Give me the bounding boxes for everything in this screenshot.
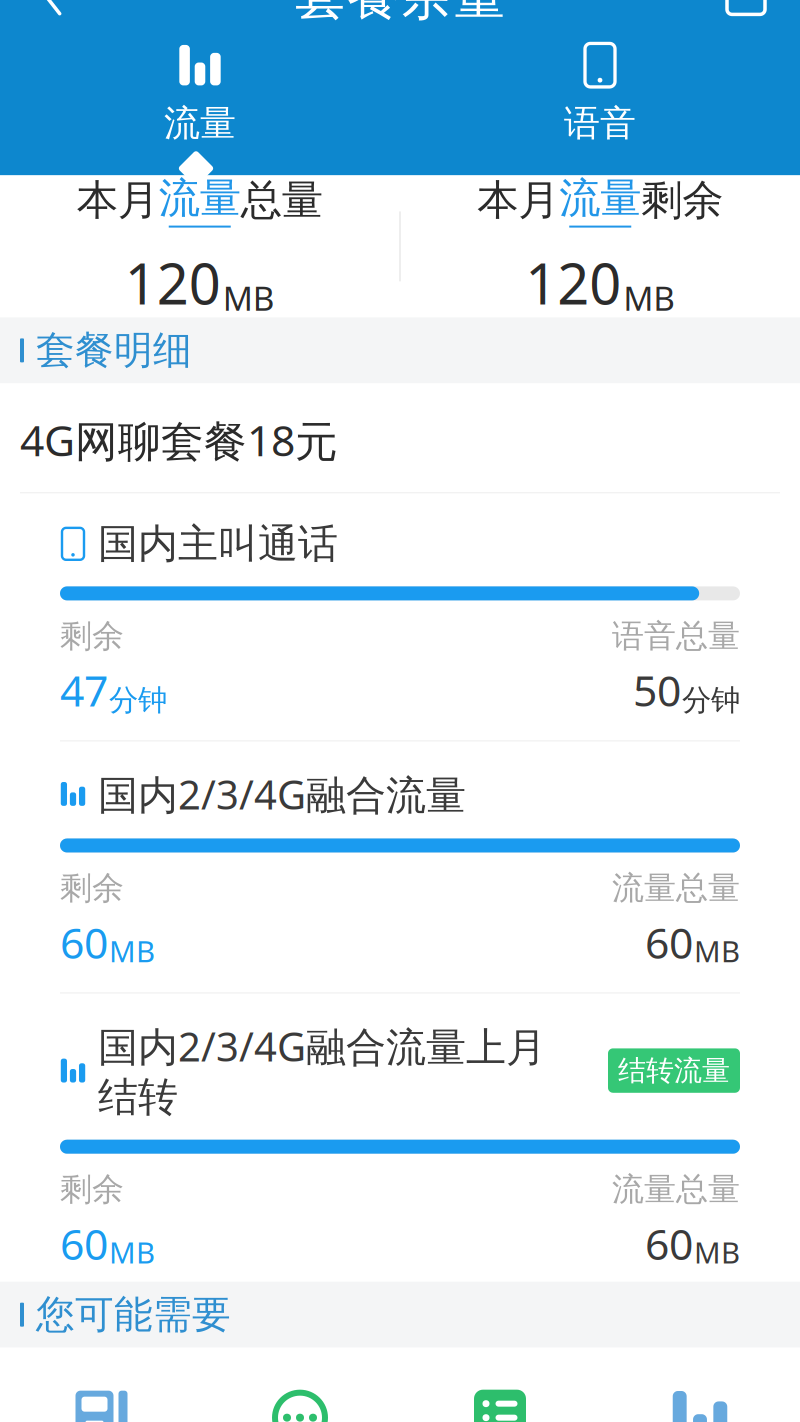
staticText: MB xyxy=(109,931,155,970)
staticText: 60 xyxy=(60,914,108,970)
staticText: 本月 xyxy=(77,175,159,226)
staticText: MB xyxy=(694,1233,740,1272)
staticText: 47 xyxy=(60,662,108,718)
staticText: 60 xyxy=(60,1215,108,1272)
staticText: 流量总量 xyxy=(612,868,740,908)
staticText: 流量 xyxy=(164,101,236,145)
staticText: 国内2/3/4G融合流量 xyxy=(98,767,466,820)
button[interactable]: 流量直充 xyxy=(0,1382,200,1422)
staticText: 剩余 xyxy=(60,616,124,656)
staticText: 语音总量 xyxy=(612,616,740,656)
staticText: 60 xyxy=(645,914,693,970)
staticText: 本月 xyxy=(477,175,559,226)
staticText: 剩余 xyxy=(60,1170,124,1209)
staticText: 国内主叫通话 xyxy=(98,519,338,568)
button[interactable]: 流量详单 xyxy=(400,1382,600,1422)
staticText: 分钟 xyxy=(109,682,167,718)
staticText: MB xyxy=(694,931,740,970)
staticText: 剩余 xyxy=(60,868,124,908)
staticText: MB xyxy=(623,276,675,320)
staticText: 套餐余量 xyxy=(294,0,506,28)
button[interactable]: 返回 xyxy=(18,0,90,27)
staticText: 60 xyxy=(645,1215,693,1272)
staticText: MB xyxy=(223,276,275,320)
staticText: 语音 xyxy=(564,101,636,145)
staticText: 总量 xyxy=(241,175,323,226)
staticText: 120 xyxy=(525,246,621,320)
staticText: 流量 xyxy=(559,173,641,224)
staticText: 4G网聊套餐18元 xyxy=(20,411,338,468)
staticText: 套餐明细 xyxy=(36,327,192,374)
staticText: 结转流量 xyxy=(618,1053,730,1088)
button[interactable]: 分享 xyxy=(710,0,782,27)
staticText: 流量 xyxy=(159,173,241,224)
staticText: 剩余 xyxy=(641,175,723,226)
button[interactable]: 语音 xyxy=(400,43,800,145)
button[interactable]: 流量套餐 xyxy=(600,1382,800,1422)
button[interactable]: 流量 xyxy=(0,43,400,145)
staticText: 流量总量 xyxy=(612,1170,740,1209)
staticText: 您可能需要 xyxy=(36,1291,231,1338)
staticText: 120 xyxy=(125,246,221,320)
button[interactable]: 流量使用详情 xyxy=(200,1382,400,1422)
staticText: 分钟 xyxy=(682,682,740,718)
staticText: MB xyxy=(109,1233,155,1272)
staticText: 国内2/3/4G融合流量上月结转 xyxy=(98,1019,546,1122)
staticText: 50 xyxy=(633,662,681,718)
